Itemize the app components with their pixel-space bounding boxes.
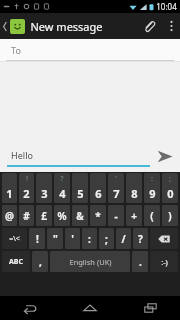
button[interactable]: " — [47, 228, 63, 249]
button[interactable]: * — [90, 205, 106, 226]
button[interactable]: / — [116, 228, 131, 249]
staticText: ( — [150, 209, 154, 223]
button[interactable]: , — [32, 251, 48, 272]
button[interactable]: + — [126, 205, 142, 226]
button[interactable]: ? — [133, 228, 148, 249]
staticText: 2 — [23, 186, 30, 201]
button[interactable]: Attach — [136, 13, 162, 39]
button[interactable]: To — [0, 39, 180, 61]
button[interactable]: ; — [162, 173, 178, 203]
staticText: English (UK) — [69, 257, 112, 267]
staticText: 10:04 — [156, 1, 177, 12]
staticText: ' — [71, 232, 74, 246]
button[interactable]: 3 — [36, 173, 52, 203]
staticText: 4 — [59, 186, 66, 201]
staticText: ; — [169, 174, 171, 184]
button[interactable]: :-) — [150, 251, 178, 272]
staticText: / — [121, 232, 126, 246]
button[interactable]: 6 — [90, 173, 106, 203]
button[interactable]: Recent apps — [120, 296, 180, 320]
button[interactable]: : — [144, 173, 160, 203]
button[interactable]: ABC — [2, 251, 30, 272]
button[interactable]: ( — [144, 205, 160, 226]
staticText: 6 — [95, 186, 102, 201]
staticText: 1 — [6, 186, 13, 201]
staticText: & — [76, 209, 84, 223]
button[interactable]: % — [54, 205, 70, 226]
staticText: ! — [26, 174, 28, 184]
staticText: + — [131, 209, 137, 223]
button[interactable]: . — [132, 251, 148, 272]
staticText: ; — [105, 232, 108, 246]
button[interactable]: =\< — [2, 228, 27, 249]
button[interactable]: ! — [29, 228, 45, 249]
staticText: To — [11, 44, 21, 56]
staticText: 7 — [113, 186, 120, 201]
button[interactable]: # — [19, 205, 34, 226]
staticText: @ — [5, 209, 14, 223]
button[interactable]: & — [72, 205, 88, 226]
staticText: ? — [138, 232, 143, 246]
button[interactable]: English (UK) — [50, 251, 130, 272]
staticText: * — [95, 209, 101, 223]
button[interactable]: 8 — [126, 173, 142, 203]
button[interactable]: ' — [65, 228, 80, 249]
staticText: :-) — [161, 257, 168, 267]
staticText: =\< — [9, 234, 20, 244]
staticText: ABC — [9, 257, 23, 267]
button[interactable]: Hello — [7, 145, 150, 167]
staticText: 5 — [77, 186, 84, 201]
button[interactable]: More options — [162, 13, 180, 39]
staticText: # — [23, 209, 30, 223]
button[interactable]: ? — [54, 173, 70, 203]
button[interactable]: 5 — [72, 173, 88, 203]
staticText: . — [139, 255, 142, 269]
button[interactable]: ! — [19, 173, 34, 203]
button[interactable]: @ — [2, 205, 17, 226]
button[interactable] — [150, 228, 178, 249]
button[interactable]: Back — [0, 296, 60, 320]
staticText: % — [57, 209, 67, 223]
button[interactable]: Send — [150, 145, 180, 167]
staticText: 9 — [149, 186, 156, 201]
staticText: Hello — [11, 149, 33, 161]
staticText: ' — [115, 174, 117, 184]
staticText: 3 — [41, 186, 48, 201]
staticText: New message — [30, 19, 103, 34]
button[interactable]: ' — [108, 173, 124, 203]
staticText: 8 — [131, 186, 138, 201]
staticText: : — [151, 174, 153, 184]
staticText: : — [88, 232, 91, 246]
staticText: " — [53, 232, 58, 246]
button[interactable]: Home — [60, 296, 120, 320]
button[interactable]: - — [108, 205, 124, 226]
button[interactable]: Navigate up — [0, 13, 107, 39]
staticText: 0 — [167, 186, 174, 201]
button[interactable]: ; — [99, 228, 114, 249]
staticText: £ — [41, 209, 47, 223]
button[interactable]: £ — [36, 205, 52, 226]
staticText: , — [39, 255, 42, 269]
button[interactable]: ) — [162, 205, 178, 226]
staticText: ? — [60, 174, 64, 184]
staticText: ! — [36, 232, 39, 246]
staticText: ) — [168, 209, 172, 223]
button[interactable]: 1 — [2, 173, 17, 203]
button[interactable]: : — [82, 228, 97, 249]
staticText: - — [114, 209, 118, 223]
